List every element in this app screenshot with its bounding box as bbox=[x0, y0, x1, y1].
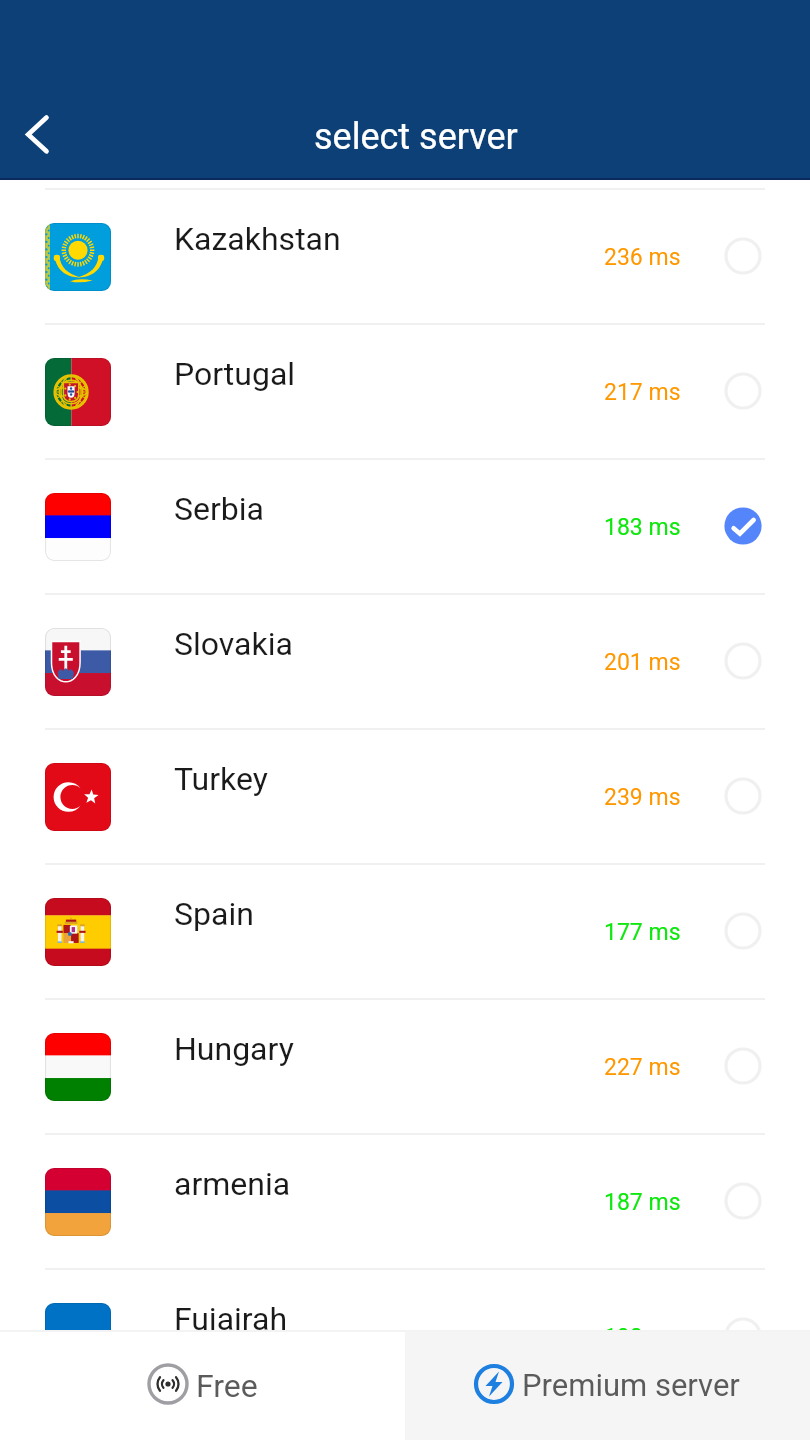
button[interactable]: Premium server bbox=[405, 1332, 810, 1440]
button[interactable]: Back bbox=[0, 94, 76, 170]
staticText: 187 ms bbox=[604, 1189, 681, 1216]
button[interactable]: Select Portugal bbox=[721, 369, 765, 413]
staticText: Premium server bbox=[522, 1367, 740, 1403]
button[interactable]: Select Slovakia bbox=[721, 639, 765, 683]
button[interactable]: Select armenia bbox=[721, 1179, 765, 1223]
button[interactable]: Kazakhstan bbox=[0, 190, 810, 323]
staticText: 236 ms bbox=[604, 244, 681, 271]
staticText: 183 ms bbox=[604, 514, 681, 541]
staticText: Slovakia bbox=[174, 625, 293, 663]
staticText: Free bbox=[196, 1367, 258, 1405]
button[interactable]: Serbia selected bbox=[721, 504, 765, 548]
button[interactable]: Select Hungary bbox=[721, 1044, 765, 1088]
staticText: Turkey bbox=[174, 760, 268, 798]
staticText: 227 ms bbox=[604, 1054, 681, 1081]
staticText: 190 ms bbox=[604, 1324, 681, 1351]
button[interactable]: Select Spain bbox=[721, 909, 765, 953]
button[interactable]: armenia bbox=[0, 1135, 810, 1268]
button[interactable]: Hungary bbox=[0, 1000, 810, 1133]
staticText: Fujairah bbox=[174, 1300, 288, 1338]
button[interactable]: Spain bbox=[0, 865, 810, 998]
button[interactable]: Portugal bbox=[0, 325, 810, 458]
button[interactable]: Select Fujairah bbox=[721, 1314, 765, 1358]
button[interactable]: Turkey bbox=[0, 730, 810, 863]
staticText: 177 ms bbox=[604, 919, 681, 946]
button[interactable]: Fujairah bbox=[0, 1270, 810, 1403]
button[interactable]: Serbia bbox=[0, 460, 810, 593]
staticText: Serbia bbox=[174, 490, 264, 528]
staticText: Kazakhstan bbox=[174, 220, 341, 258]
staticText: 201 ms bbox=[604, 649, 681, 676]
staticText: Hungary bbox=[174, 1030, 294, 1068]
staticText: 217 ms bbox=[604, 379, 681, 406]
button[interactable]: Select Turkey bbox=[721, 774, 765, 818]
button[interactable]: Select Kazakhstan bbox=[721, 234, 765, 278]
staticText: select server bbox=[314, 116, 518, 158]
staticText: armenia bbox=[174, 1165, 291, 1203]
button[interactable]: Free bbox=[0, 1332, 405, 1440]
staticText: 239 ms bbox=[604, 784, 681, 811]
staticText: Spain bbox=[174, 895, 254, 933]
staticText: Portugal bbox=[174, 355, 296, 393]
button[interactable]: Slovakia bbox=[0, 595, 810, 728]
